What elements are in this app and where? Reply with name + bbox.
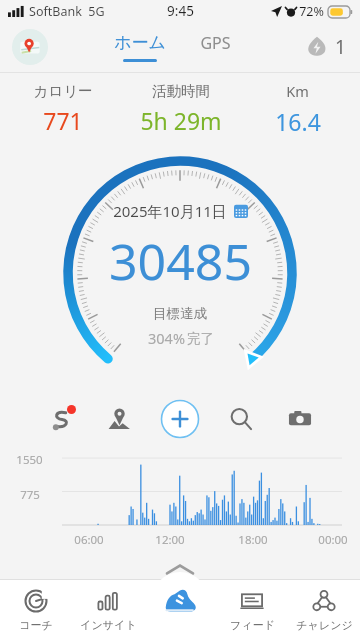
button[interactable]: Expand: [0, 559, 360, 579]
staticText: 2025年10月11日: [113, 201, 227, 221]
staticText: 1550: [16, 452, 43, 468]
button[interactable]: Km: [239, 77, 356, 141]
staticText: 06:00: [74, 532, 104, 548]
button[interactable]: カロリー: [4, 78, 122, 140]
staticText: 目標達成: [153, 305, 207, 322]
staticText: GPS: [200, 32, 231, 54]
button[interactable]: チャレンジ: [288, 580, 360, 640]
button[interactable]: Search: [221, 399, 261, 439]
staticText: チャレンジ: [296, 618, 353, 632]
button[interactable]: Location: [99, 399, 139, 439]
staticText: ホーム: [114, 32, 166, 53]
button[interactable]: 1550: [0, 448, 360, 553]
staticText: 12:00: [155, 532, 185, 548]
button[interactable]: 活動時間: [122, 78, 239, 140]
button[interactable]: Add: [157, 396, 203, 442]
staticText: フィード: [230, 618, 275, 632]
staticText: 5h 29m: [140, 105, 222, 136]
staticText: カロリー: [33, 82, 93, 100]
staticText: 1: [335, 34, 346, 60]
staticText: 5G: [88, 3, 105, 20]
staticText: 18:00: [238, 532, 268, 548]
staticText: 775: [20, 487, 40, 503]
button[interactable]: 2025年10月11日: [113, 201, 248, 221]
staticText: インサイト: [80, 618, 137, 632]
staticText: 72%: [299, 3, 324, 20]
button[interactable]: インサイト: [72, 580, 144, 640]
staticText: 活動時間: [152, 82, 210, 100]
button[interactable]: フィード: [216, 580, 288, 640]
staticText: 9:45: [167, 2, 194, 20]
button[interactable]: コーチ: [0, 580, 72, 640]
staticText: 完了: [187, 330, 214, 347]
staticText: 304%: [146, 328, 187, 348]
button[interactable]: ホーム: [108, 32, 172, 62]
button[interactable]: 1: [306, 34, 346, 60]
staticText: 771: [43, 105, 83, 136]
staticText: コーチ: [19, 618, 53, 632]
staticText: 16.4: [275, 106, 321, 137]
button[interactable]: Map: [12, 29, 48, 65]
staticText: SoftBank: [29, 3, 82, 20]
button[interactable]: Activity: [152, 572, 208, 628]
button[interactable]: Camera: [280, 399, 320, 439]
staticText: Km: [286, 81, 309, 101]
button[interactable]: GPS: [194, 36, 237, 58]
button[interactable]: Routes: [40, 399, 80, 439]
staticText: 30485: [109, 227, 252, 295]
staticText: 00:00: [318, 532, 348, 548]
